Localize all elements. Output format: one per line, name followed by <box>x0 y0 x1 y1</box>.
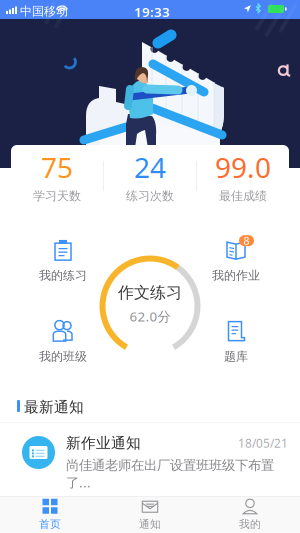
button[interactable]: 通知 <box>100 498 200 532</box>
staticText: 我的班级 <box>39 349 87 364</box>
staticText: 尚佳通老师在出厂设置班班级下布置了... <box>66 457 274 491</box>
staticText: 中国移动 <box>20 4 68 19</box>
staticText: 最新通知 <box>24 398 84 416</box>
staticText: 18/05/21 <box>238 435 288 451</box>
staticText: 首页 <box>39 518 61 531</box>
staticText: 我的练习 <box>39 268 87 283</box>
staticText: 题库 <box>224 349 248 364</box>
staticText: 通知 <box>139 518 161 531</box>
button[interactable]: 我的班级 <box>27 318 99 366</box>
button[interactable]: 新作业通知 <box>0 426 300 478</box>
staticText: 练习次数 <box>126 189 174 203</box>
staticText: 学习天数 <box>33 189 81 203</box>
staticText: 62.0分 <box>129 307 170 325</box>
button[interactable]: 首页 <box>0 498 100 532</box>
staticText: 99.0 <box>215 148 271 186</box>
staticText: 我的作业 <box>212 268 260 283</box>
staticText: 我的 <box>239 518 261 531</box>
button[interactable]: 8 <box>200 237 272 285</box>
staticText: 最佳成绩 <box>219 189 267 203</box>
button[interactable]: 题库 <box>200 318 272 366</box>
staticText: 8 <box>243 233 249 248</box>
staticText: 作文练习 <box>118 283 182 302</box>
staticText: 19:33 <box>134 3 170 21</box>
staticText: 24 <box>134 148 166 186</box>
button[interactable]: 我的练习 <box>27 237 99 285</box>
staticText: 新作业通知 <box>66 434 141 452</box>
staticText: 75 <box>41 148 73 186</box>
button[interactable]: 我的 <box>200 498 300 532</box>
